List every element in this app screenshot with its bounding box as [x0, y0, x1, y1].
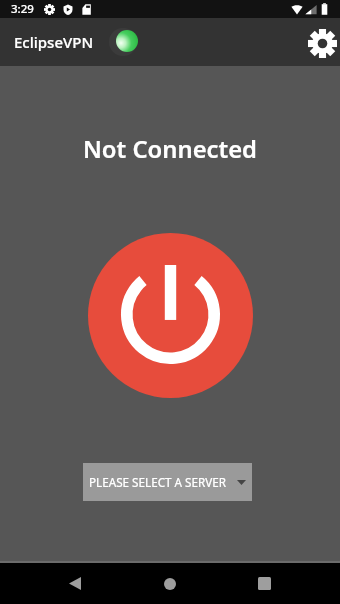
staticText: 3:29: [11, 1, 34, 17]
button[interactable]: Connect: [88, 233, 253, 398]
button[interactable]: Settings: [305, 25, 339, 59]
button[interactable]: Back: [51, 563, 99, 604]
button[interactable]: Home: [146, 563, 194, 604]
staticText: EclipseVPN: [14, 32, 94, 52]
button[interactable]: Recent apps: [240, 563, 288, 604]
button[interactable]: PLEASE SELECT A SERVER: [83, 463, 252, 501]
staticText: PLEASE SELECT A SERVER: [89, 474, 227, 490]
staticText: Not Connected: [83, 133, 257, 165]
button[interactable]: Connection status: [110, 27, 140, 57]
